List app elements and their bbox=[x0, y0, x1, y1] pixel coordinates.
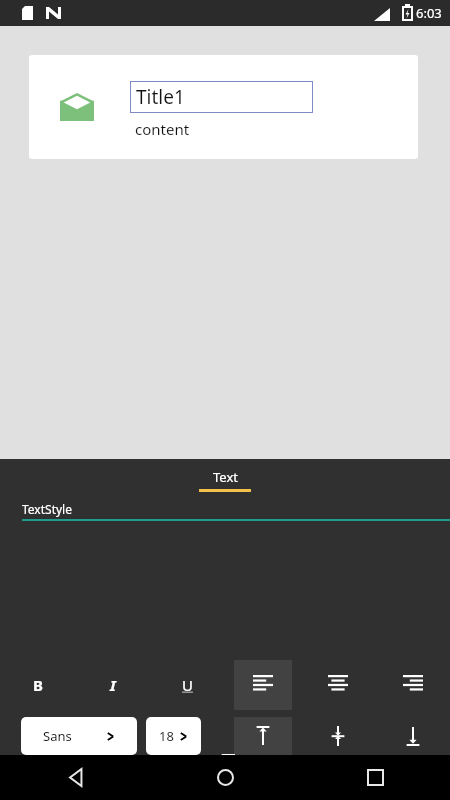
staticText: Sans bbox=[43, 727, 72, 745]
button[interactable]: U bbox=[150, 659, 225, 711]
button[interactable]: Sans bbox=[21, 717, 137, 755]
button[interactable]: Text bbox=[183, 468, 267, 492]
button[interactable]: Align bbox=[384, 660, 442, 710]
staticText: 6:03 bbox=[416, 4, 442, 22]
button[interactable]: Back bbox=[0, 755, 150, 800]
button[interactable]: Align bbox=[309, 660, 367, 710]
staticText: Title1 bbox=[136, 84, 185, 110]
button[interactable]: Mail bbox=[29, 55, 418, 159]
button[interactable]: Home bbox=[150, 755, 300, 800]
button[interactable]: B bbox=[0, 659, 75, 711]
staticText: B bbox=[33, 675, 43, 695]
staticText: I bbox=[110, 675, 116, 695]
button[interactable]: Align bbox=[384, 717, 442, 755]
staticText: Text bbox=[213, 468, 238, 486]
button[interactable]: Recents bbox=[300, 755, 450, 800]
other: Mail bbox=[60, 93, 94, 121]
button[interactable]: Align bbox=[234, 660, 292, 710]
button[interactable]: Title1 bbox=[130, 81, 313, 113]
button[interactable]: I bbox=[75, 659, 150, 711]
staticText: TextStyle bbox=[22, 501, 72, 517]
staticText: content bbox=[135, 119, 190, 139]
staticText: U bbox=[182, 675, 193, 695]
staticText: 18 bbox=[159, 727, 174, 745]
button[interactable]: Align bbox=[234, 717, 292, 755]
button[interactable]: Align bbox=[309, 717, 367, 755]
button[interactable]: 18 bbox=[146, 717, 201, 755]
